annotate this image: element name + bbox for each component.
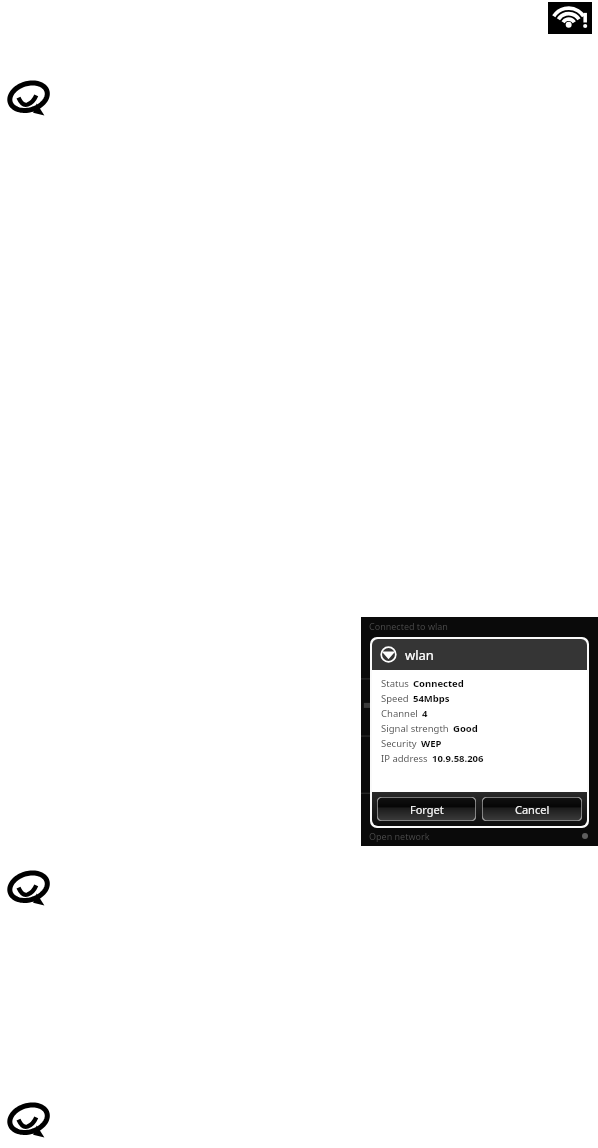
- button[interactable]: Forget: [377, 797, 476, 821]
- staticText: Open network: [369, 830, 430, 842]
- staticText: 54Mbps: [413, 692, 450, 705]
- button[interactable]: wlan: [380, 639, 587, 670]
- staticText: Security: [381, 737, 417, 750]
- staticText: Forget: [410, 802, 444, 817]
- staticText: Connected to wlan: [369, 620, 448, 632]
- staticText: Good: [453, 722, 478, 735]
- staticText: 4: [422, 707, 428, 720]
- staticText: Cancel: [515, 802, 550, 817]
- button[interactable]: Cancel: [482, 797, 582, 821]
- staticText: Status: [381, 677, 409, 690]
- staticText: Speed: [381, 692, 409, 705]
- staticText: Signal strength: [381, 722, 449, 735]
- staticText: IP address: [381, 752, 428, 765]
- staticText: Connected: [413, 677, 464, 690]
- staticText: 10.9.58.206: [432, 752, 484, 765]
- button[interactable]: Wi-Fi status: [548, 2, 592, 34]
- staticText: Channel: [381, 707, 418, 720]
- staticText: WEP: [421, 737, 442, 750]
- staticText: wlan: [405, 646, 434, 664]
